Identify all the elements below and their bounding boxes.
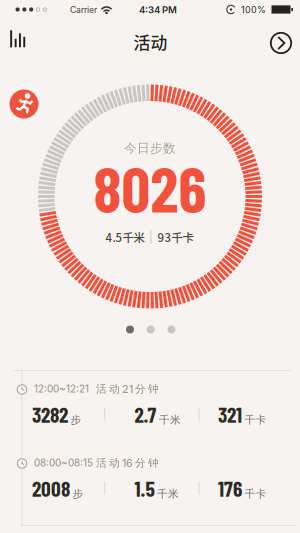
staticText: 活动: [133, 30, 167, 54]
staticText: 今日步数: [124, 140, 176, 156]
staticText: 08:00~08:15: [34, 457, 93, 469]
staticText: 100%: [241, 4, 266, 15]
staticText: 1.5: [134, 475, 154, 501]
staticText: 千卡: [244, 413, 266, 427]
staticText: 4:34 PM: [139, 4, 177, 16]
staticText: 步: [70, 413, 81, 427]
staticText: 2.7: [134, 401, 156, 427]
staticText: 活 动 21 分 钟: [96, 382, 159, 396]
staticText: 3282: [32, 401, 68, 427]
staticText: 8026: [93, 149, 206, 225]
staticText: 321: [218, 401, 242, 427]
staticText: 步: [72, 487, 83, 501]
staticText: 活 动 16 分 钟: [96, 456, 159, 470]
staticText: Carrier: [70, 5, 97, 15]
staticText: |: [149, 230, 153, 244]
button[interactable]: Statistics: [0, 0, 300, 533]
staticText: 4.5千米: [105, 229, 144, 245]
staticText: 千卡: [244, 487, 266, 501]
staticText: 千米: [159, 413, 181, 427]
staticText: 176: [218, 475, 242, 501]
staticText: 2008: [32, 475, 70, 501]
staticText: 千米: [157, 487, 179, 501]
button[interactable]: Next: [0, 0, 300, 533]
staticText: 12:00~12:21: [34, 383, 89, 395]
staticText: 93千卡: [157, 229, 193, 245]
